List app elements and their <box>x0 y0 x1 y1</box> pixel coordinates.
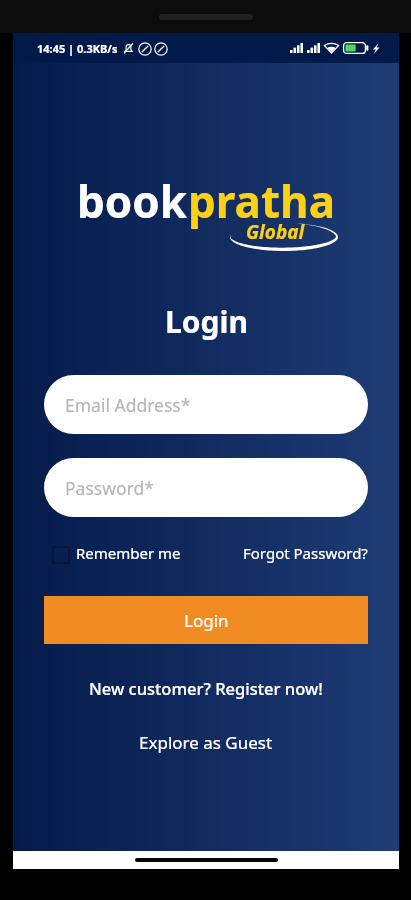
button[interactable]: New customer? Register now! <box>89 677 323 699</box>
button[interactable]: Email Address* <box>44 375 368 434</box>
staticText: 14:45 | 0.3KB/s <box>37 41 118 56</box>
staticText: book <box>77 171 188 231</box>
staticText: Forgot Password? <box>243 543 368 563</box>
staticText: Remember me <box>76 543 181 563</box>
staticText: pratha <box>188 171 335 231</box>
staticText: Email Address* <box>65 393 191 417</box>
staticText: Password* <box>65 476 154 500</box>
button[interactable]: Explore as Guest <box>139 731 273 754</box>
staticText: Login <box>184 609 229 632</box>
button[interactable]: Login <box>44 596 368 644</box>
staticText: Global <box>246 219 305 245</box>
button[interactable]: Forgot Password? <box>243 543 368 563</box>
staticText: Login <box>165 301 248 342</box>
button[interactable]: Password* <box>44 458 368 517</box>
staticText: New customer? Register now! <box>89 677 323 699</box>
staticText: Explore as Guest <box>139 731 273 754</box>
button[interactable]: Remember me <box>44 543 181 563</box>
